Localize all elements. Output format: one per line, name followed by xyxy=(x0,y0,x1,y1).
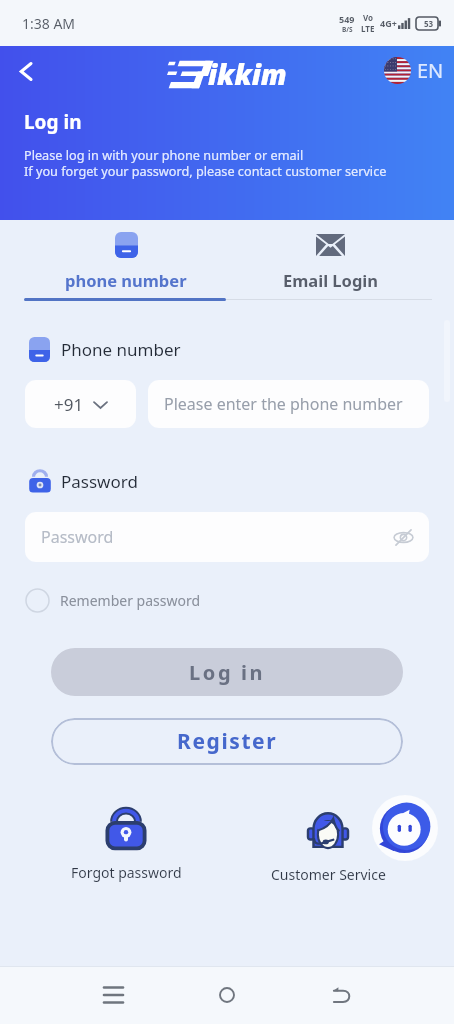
staticText: 4G+ xyxy=(380,17,397,29)
staticText: ikkim xyxy=(208,55,287,93)
staticText: Email Login xyxy=(283,269,378,291)
button[interactable]: Back xyxy=(6,51,46,91)
staticText: LTE xyxy=(361,23,375,34)
button[interactable]: Password xyxy=(25,512,429,562)
staticText: 53 xyxy=(424,18,434,29)
staticText: Remember password xyxy=(60,591,201,610)
staticText: Log in xyxy=(24,109,82,135)
button[interactable]: Customer Service xyxy=(227,809,429,884)
button[interactable]: Recent apps xyxy=(89,971,137,1019)
button[interactable]: Please enter the phone number xyxy=(148,380,429,428)
button[interactable]: +91 xyxy=(25,380,136,428)
staticText: Customer Service xyxy=(271,865,386,884)
button[interactable]: Show password xyxy=(390,524,416,550)
staticText: phone number xyxy=(65,269,187,291)
button[interactable]: Remember password xyxy=(25,588,201,613)
button[interactable]: EN xyxy=(384,57,444,84)
staticText: 549 xyxy=(339,13,355,25)
staticText: 1:38 AM xyxy=(22,14,76,33)
staticText: B/S xyxy=(342,25,353,34)
button[interactable]: Log in xyxy=(51,648,403,696)
staticText: Phone number xyxy=(61,338,181,361)
staticText: Register xyxy=(177,727,278,756)
staticText: Please log in with your phone number or … xyxy=(24,146,387,180)
staticText: Forgot password xyxy=(71,863,182,882)
button[interactable]: Open chat support xyxy=(372,795,438,861)
staticText: +91 xyxy=(54,393,84,416)
button[interactable]: Home xyxy=(203,971,251,1019)
button[interactable]: Back xyxy=(317,971,365,1019)
staticText: Password xyxy=(41,526,114,548)
staticText: EN xyxy=(417,57,444,84)
button[interactable]: Email Login xyxy=(228,220,432,302)
staticText: Log in xyxy=(189,659,266,686)
staticText: Password xyxy=(61,470,138,493)
staticText: Please enter the phone number xyxy=(164,393,403,415)
button[interactable]: Register xyxy=(51,718,403,765)
staticText: Vo xyxy=(363,12,374,23)
button[interactable]: phone number xyxy=(24,220,228,302)
button[interactable]: Forgot password xyxy=(25,809,227,882)
